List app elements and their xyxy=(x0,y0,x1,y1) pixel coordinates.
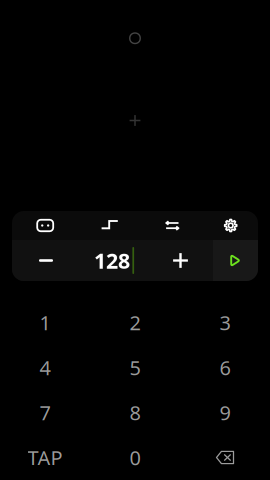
staticText: 0 xyxy=(129,444,140,471)
button[interactable]: Step xyxy=(78,211,141,240)
button[interactable]: Decrease tempo xyxy=(12,240,80,281)
button[interactable]: Beats xyxy=(12,211,78,240)
button[interactable]: 7 xyxy=(0,390,90,435)
staticText: 2 xyxy=(129,309,140,336)
staticText: 8 xyxy=(129,399,140,426)
button[interactable]: 4 xyxy=(0,345,90,390)
staticText: 3 xyxy=(219,309,230,336)
button[interactable]: Add step xyxy=(129,114,141,126)
button[interactable]: Delete xyxy=(180,435,270,480)
staticText: 7 xyxy=(39,399,50,426)
button[interactable]: Settings xyxy=(203,211,258,240)
button[interactable]: 5 xyxy=(90,345,180,390)
staticText: 4 xyxy=(39,354,50,381)
staticText: 9 xyxy=(219,399,230,426)
button[interactable]: 6 xyxy=(180,345,270,390)
staticText: 1 xyxy=(39,309,50,336)
button[interactable]: 9 xyxy=(180,390,270,435)
staticText: 6 xyxy=(219,354,230,381)
staticText: TAP xyxy=(27,444,62,471)
button[interactable]: Play xyxy=(213,240,258,281)
button[interactable]: 2 xyxy=(90,300,180,345)
button[interactable]: Increase tempo xyxy=(148,240,213,281)
button[interactable]: 3 xyxy=(180,300,270,345)
button[interactable]: 1 xyxy=(0,300,90,345)
button[interactable]: 8 xyxy=(90,390,180,435)
staticText: 128 xyxy=(94,246,130,275)
button[interactable]: TAP xyxy=(0,435,90,480)
staticText: 5 xyxy=(129,354,140,381)
button[interactable]: 0 xyxy=(90,435,180,480)
button[interactable]: Direction xyxy=(141,211,203,240)
